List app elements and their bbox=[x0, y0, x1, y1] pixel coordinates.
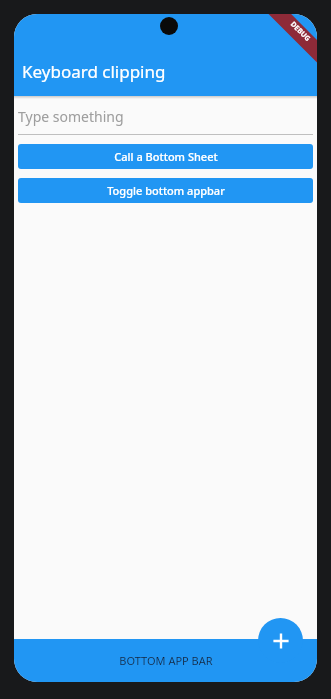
staticText: Keyboard clipping bbox=[22, 60, 166, 83]
staticText: Type something bbox=[18, 107, 124, 126]
button[interactable]: Toggle bottom appbar bbox=[18, 178, 313, 203]
staticText: DEBUG bbox=[288, 20, 313, 44]
button[interactable]: Call a Bottom Sheet bbox=[18, 144, 313, 169]
staticText: Call a Bottom Sheet bbox=[114, 149, 218, 164]
button[interactable]: Type something bbox=[18, 99, 313, 134]
button[interactable]: Add bbox=[258, 618, 303, 663]
staticText: BOTTOM APP BAR bbox=[119, 653, 213, 668]
button[interactable]: BOTTOM APP BAR bbox=[14, 639, 317, 682]
staticText: Toggle bottom appbar bbox=[107, 183, 225, 198]
